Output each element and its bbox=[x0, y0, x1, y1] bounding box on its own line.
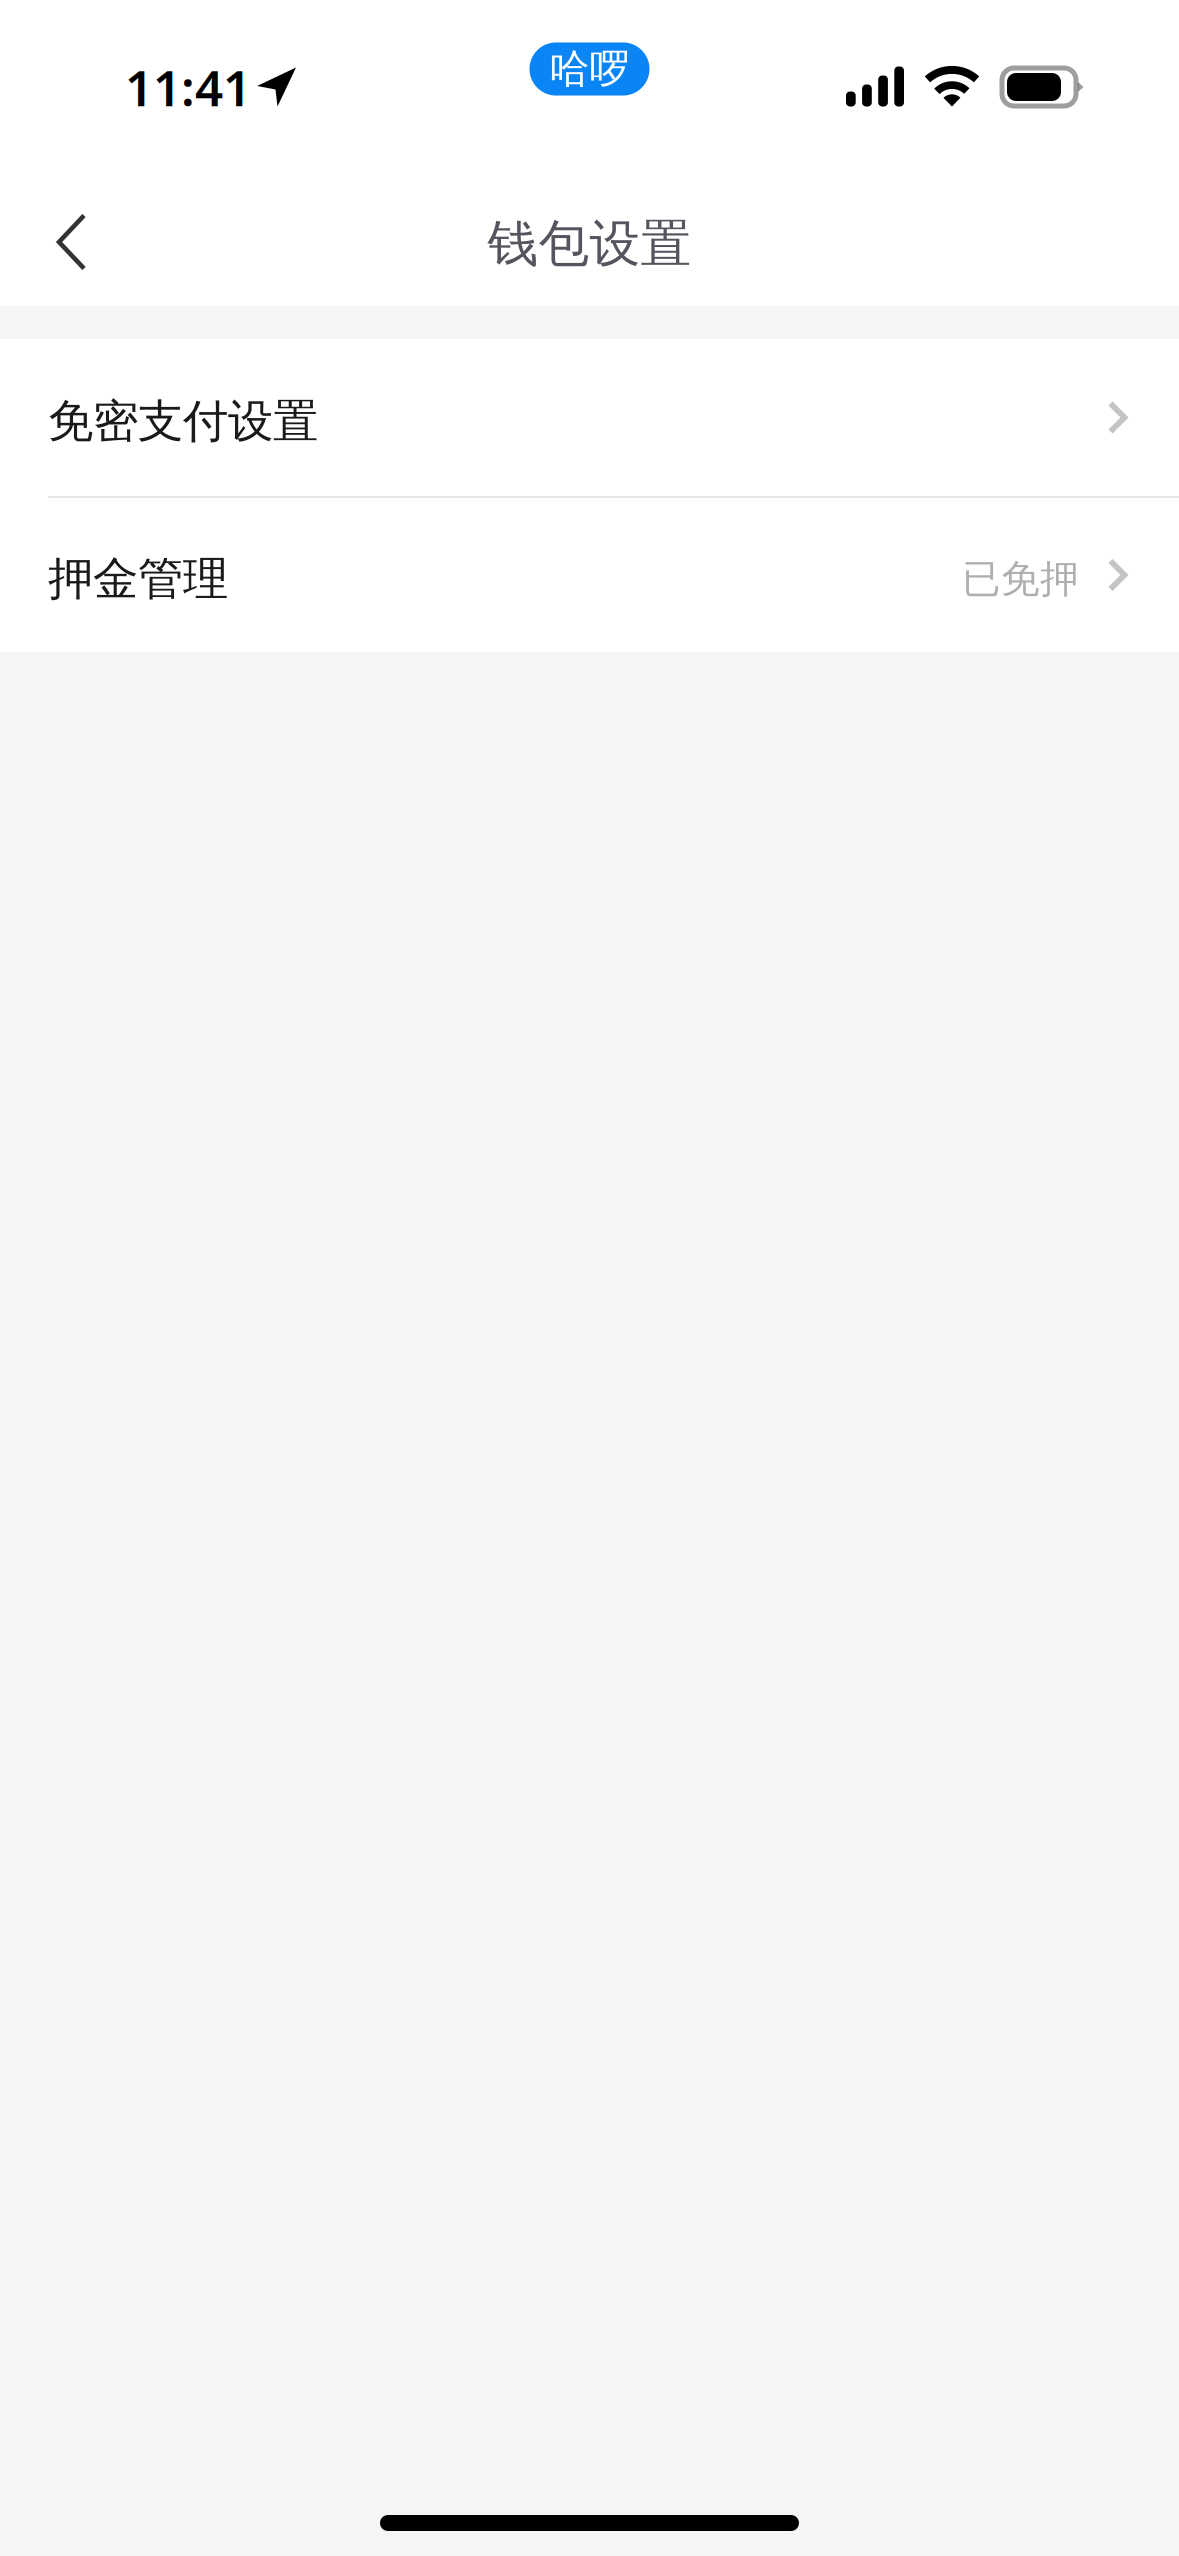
staticText: 押金管理 bbox=[48, 551, 228, 607]
button[interactable]: 押金管理 bbox=[0, 498, 1179, 652]
button[interactable]: 返回 bbox=[9, 182, 134, 302]
staticText: 哈啰 bbox=[549, 44, 629, 93]
button[interactable]: 免密支付设置 bbox=[0, 339, 1179, 496]
staticText: 已免押 bbox=[962, 555, 1079, 603]
staticText: 11:41 bbox=[125, 54, 251, 120]
staticText: 钱包设置 bbox=[487, 213, 691, 275]
staticText: 免密支付设置 bbox=[48, 394, 318, 449]
